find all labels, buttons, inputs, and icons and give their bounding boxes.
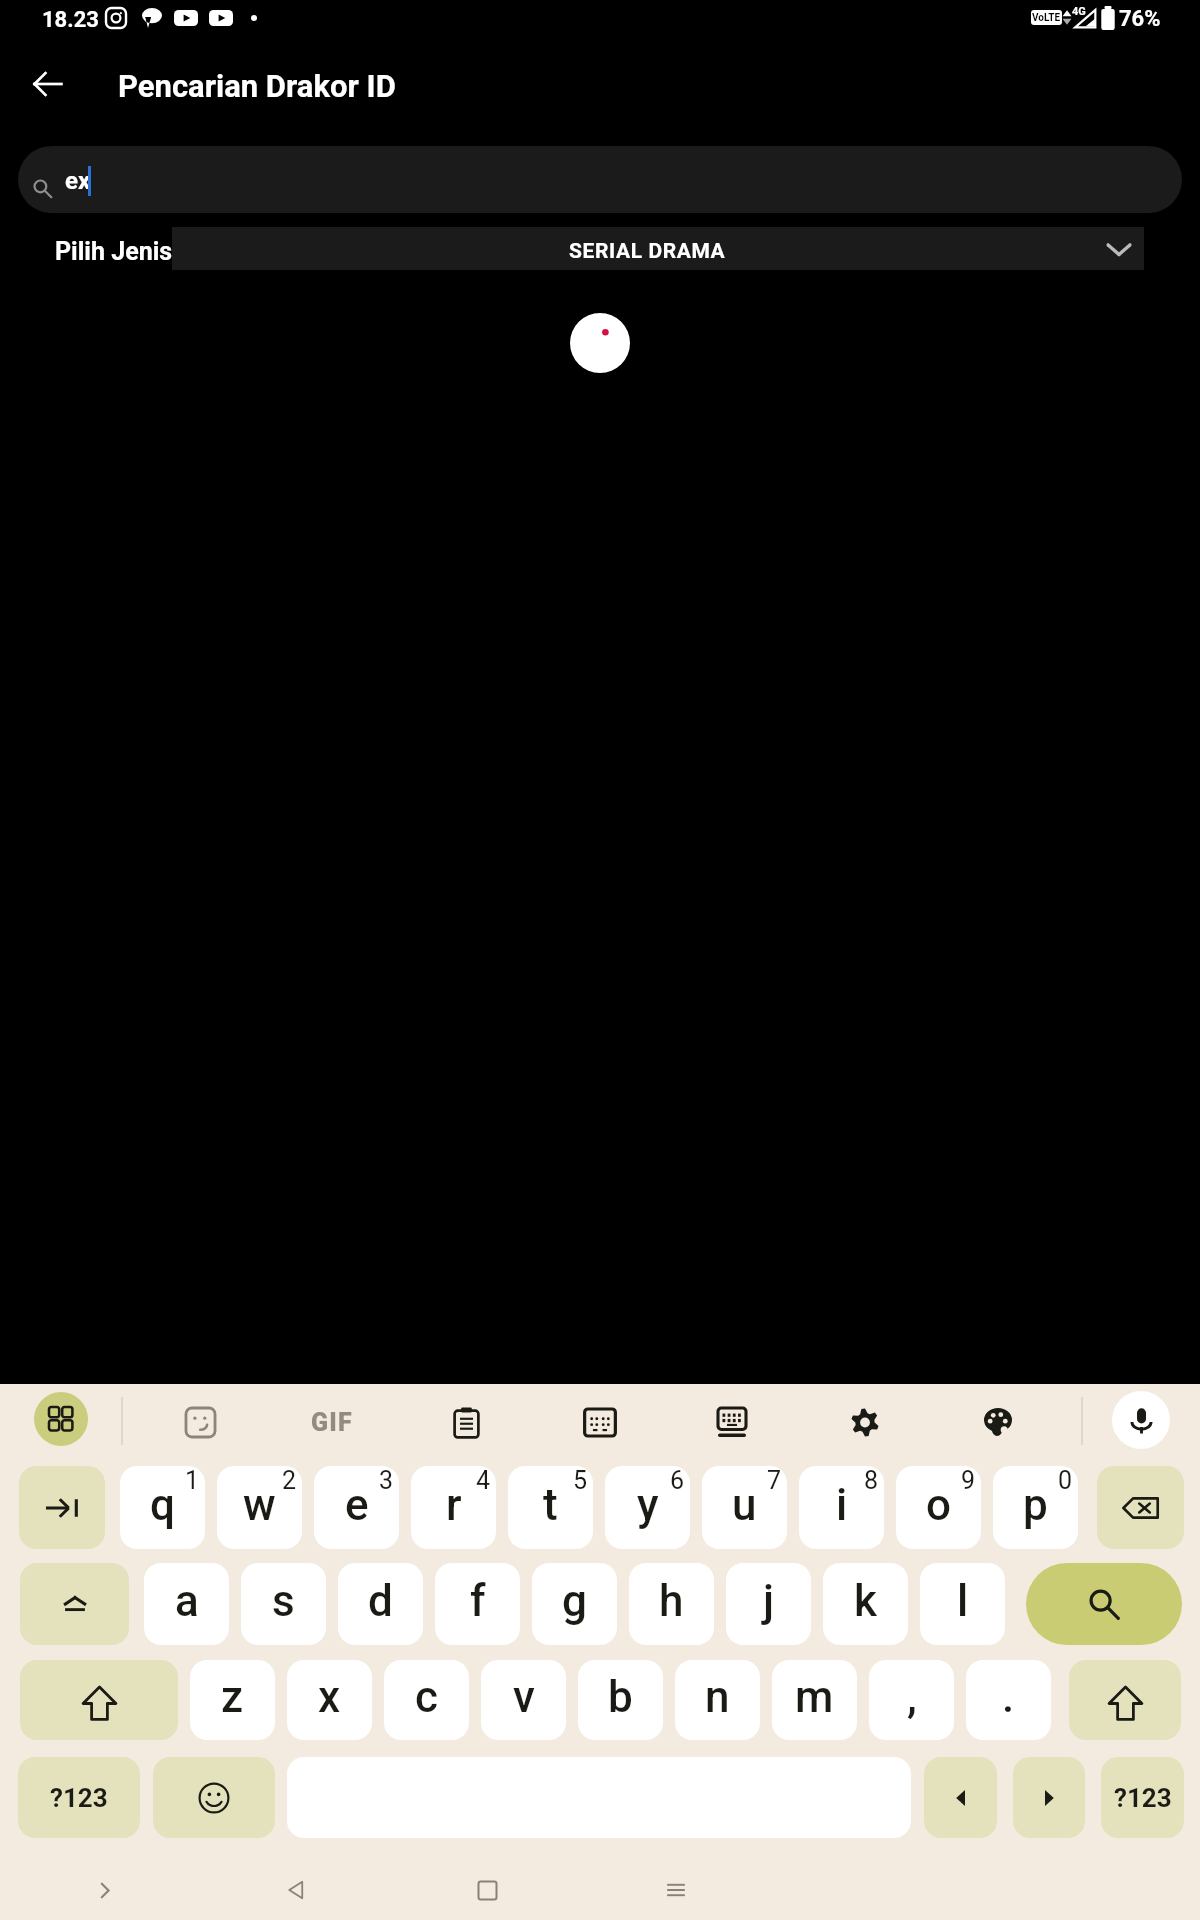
staticText: g [562,1575,587,1627]
button[interactable]: v [481,1660,566,1740]
staticText: j [763,1575,775,1627]
staticText: SERIAL DRAMA [569,239,726,264]
button[interactable]: Settings [841,1395,889,1449]
button[interactable]: b [578,1660,663,1740]
staticText: b [608,1671,633,1723]
button[interactable] [20,1563,129,1645]
button[interactable]: u [702,1466,787,1549]
button[interactable]: GIF [300,1395,364,1449]
button[interactable]: One-handed mode [708,1395,756,1449]
staticText: 7 [767,1466,782,1495]
button[interactable]: f [435,1563,520,1645]
button[interactable]: , [869,1660,954,1740]
button[interactable]: Voice input [1112,1391,1170,1449]
button[interactable]: j [726,1563,811,1645]
staticText: e [345,1479,369,1531]
button[interactable]: Home [457,1860,517,1920]
button[interactable]: SERIAL DRAMA [172,227,1144,270]
staticText: q [150,1479,175,1531]
button[interactable]: i [799,1466,884,1549]
staticText: 0 [1058,1466,1073,1495]
button[interactable]: c [384,1660,469,1740]
staticText: . [1002,1671,1015,1723]
button[interactable] [1013,1757,1085,1838]
button[interactable] [1069,1660,1181,1740]
staticText: t [543,1479,558,1531]
staticText: r [446,1479,462,1531]
button[interactable]: s [241,1563,326,1645]
staticText: ex [65,167,91,195]
button[interactable]: x [287,1660,372,1740]
button[interactable]: Expand [75,1860,135,1920]
button[interactable]: p [993,1466,1078,1549]
button[interactable]: Back [266,1860,326,1920]
button[interactable]: ?123 [18,1757,140,1838]
button[interactable]: k [823,1563,908,1645]
staticText: 1 [185,1466,200,1495]
button[interactable]: h [629,1563,714,1645]
button[interactable]: q [120,1466,205,1549]
button[interactable]: Themes [974,1395,1022,1449]
button[interactable]: Stickers [176,1395,224,1449]
button[interactable] [19,1466,105,1549]
button[interactable]: Apps [34,1392,88,1446]
staticText: 4 [476,1466,491,1495]
staticText: 8 [864,1466,879,1495]
button[interactable]: Clipboard [442,1395,490,1449]
staticText: Pencarian Drakor ID [118,68,396,104]
button[interactable]: a [144,1563,229,1645]
staticText: GIF [311,1408,353,1437]
staticText: ?123 [50,1783,108,1813]
staticText: y [637,1479,659,1531]
staticText: k [854,1575,877,1627]
staticText: 6 [670,1466,685,1495]
staticText: , [907,1671,917,1723]
button[interactable]: . [966,1660,1051,1740]
button[interactable]: n [675,1660,760,1740]
staticText: x [318,1671,341,1723]
staticText: s [272,1575,295,1627]
button[interactable] [924,1757,997,1838]
staticText: i [836,1479,848,1531]
staticText: 2 [282,1466,297,1495]
staticText: a [175,1575,199,1627]
staticText: 5 [573,1466,588,1495]
staticText: 3 [379,1466,394,1495]
button[interactable]: d [338,1563,423,1645]
staticText: z [221,1671,244,1723]
button[interactable]: w [217,1466,302,1549]
staticText: VoLTE [1032,12,1061,24]
button[interactable]: m [772,1660,857,1740]
button[interactable]: o [896,1466,981,1549]
button[interactable] [20,1660,178,1740]
staticText: v [513,1671,535,1723]
button[interactable]: Back [0,48,96,120]
staticText: m [795,1671,834,1723]
staticText: u [732,1479,757,1531]
button[interactable]: Recents [646,1860,706,1920]
staticText: 18.23 [42,7,99,33]
button[interactable]: z [190,1660,275,1740]
button[interactable]: t [508,1466,593,1549]
staticText: l [957,1575,969,1627]
staticText: f [470,1575,486,1627]
button[interactable]: ex [18,146,1182,213]
staticText: n [705,1671,730,1723]
staticText: c [415,1671,438,1723]
button[interactable]: y [605,1466,690,1549]
button[interactable]: e [314,1466,399,1549]
staticText: 9 [961,1466,976,1495]
staticText: o [926,1479,951,1531]
button[interactable]: r [411,1466,496,1549]
button[interactable]: Number pad [576,1395,624,1449]
button[interactable]: g [532,1563,617,1645]
button[interactable] [1026,1563,1182,1645]
button[interactable] [1097,1466,1184,1549]
button[interactable]: l [920,1563,1005,1645]
button[interactable] [153,1757,275,1838]
staticText: 76% [1119,6,1161,32]
staticText: w [243,1479,276,1531]
staticText: ?123 [1114,1783,1172,1813]
button[interactable]: ?123 [1101,1757,1184,1838]
